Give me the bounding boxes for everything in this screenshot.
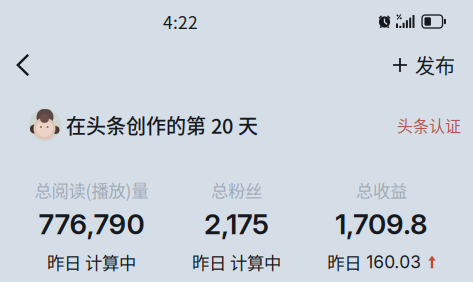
staticText: 发布 [415,50,455,79]
staticText: 1,709.8 [335,207,428,241]
button[interactable]: 头条认证 [385,105,461,145]
staticText: 4:22 [163,9,198,34]
staticText: 160.03 [366,251,421,272]
staticText: 776,790 [38,207,144,241]
staticText: 2,175 [204,207,269,241]
staticText: 昨日 计算中 [192,249,281,275]
staticText: 总收益 [356,177,407,203]
staticText: 昨日 [327,249,361,275]
button[interactable]: 发布 [383,43,465,87]
button[interactable]: Back [1,43,45,87]
staticText: 昨日 计算中 [47,249,136,275]
staticText: 在头条创作的第 20 天 [66,110,258,139]
staticText: 头条认证 [397,113,461,137]
staticText: 总粉丝 [211,177,262,203]
staticText: 总阅读(播放)量 [34,177,148,203]
